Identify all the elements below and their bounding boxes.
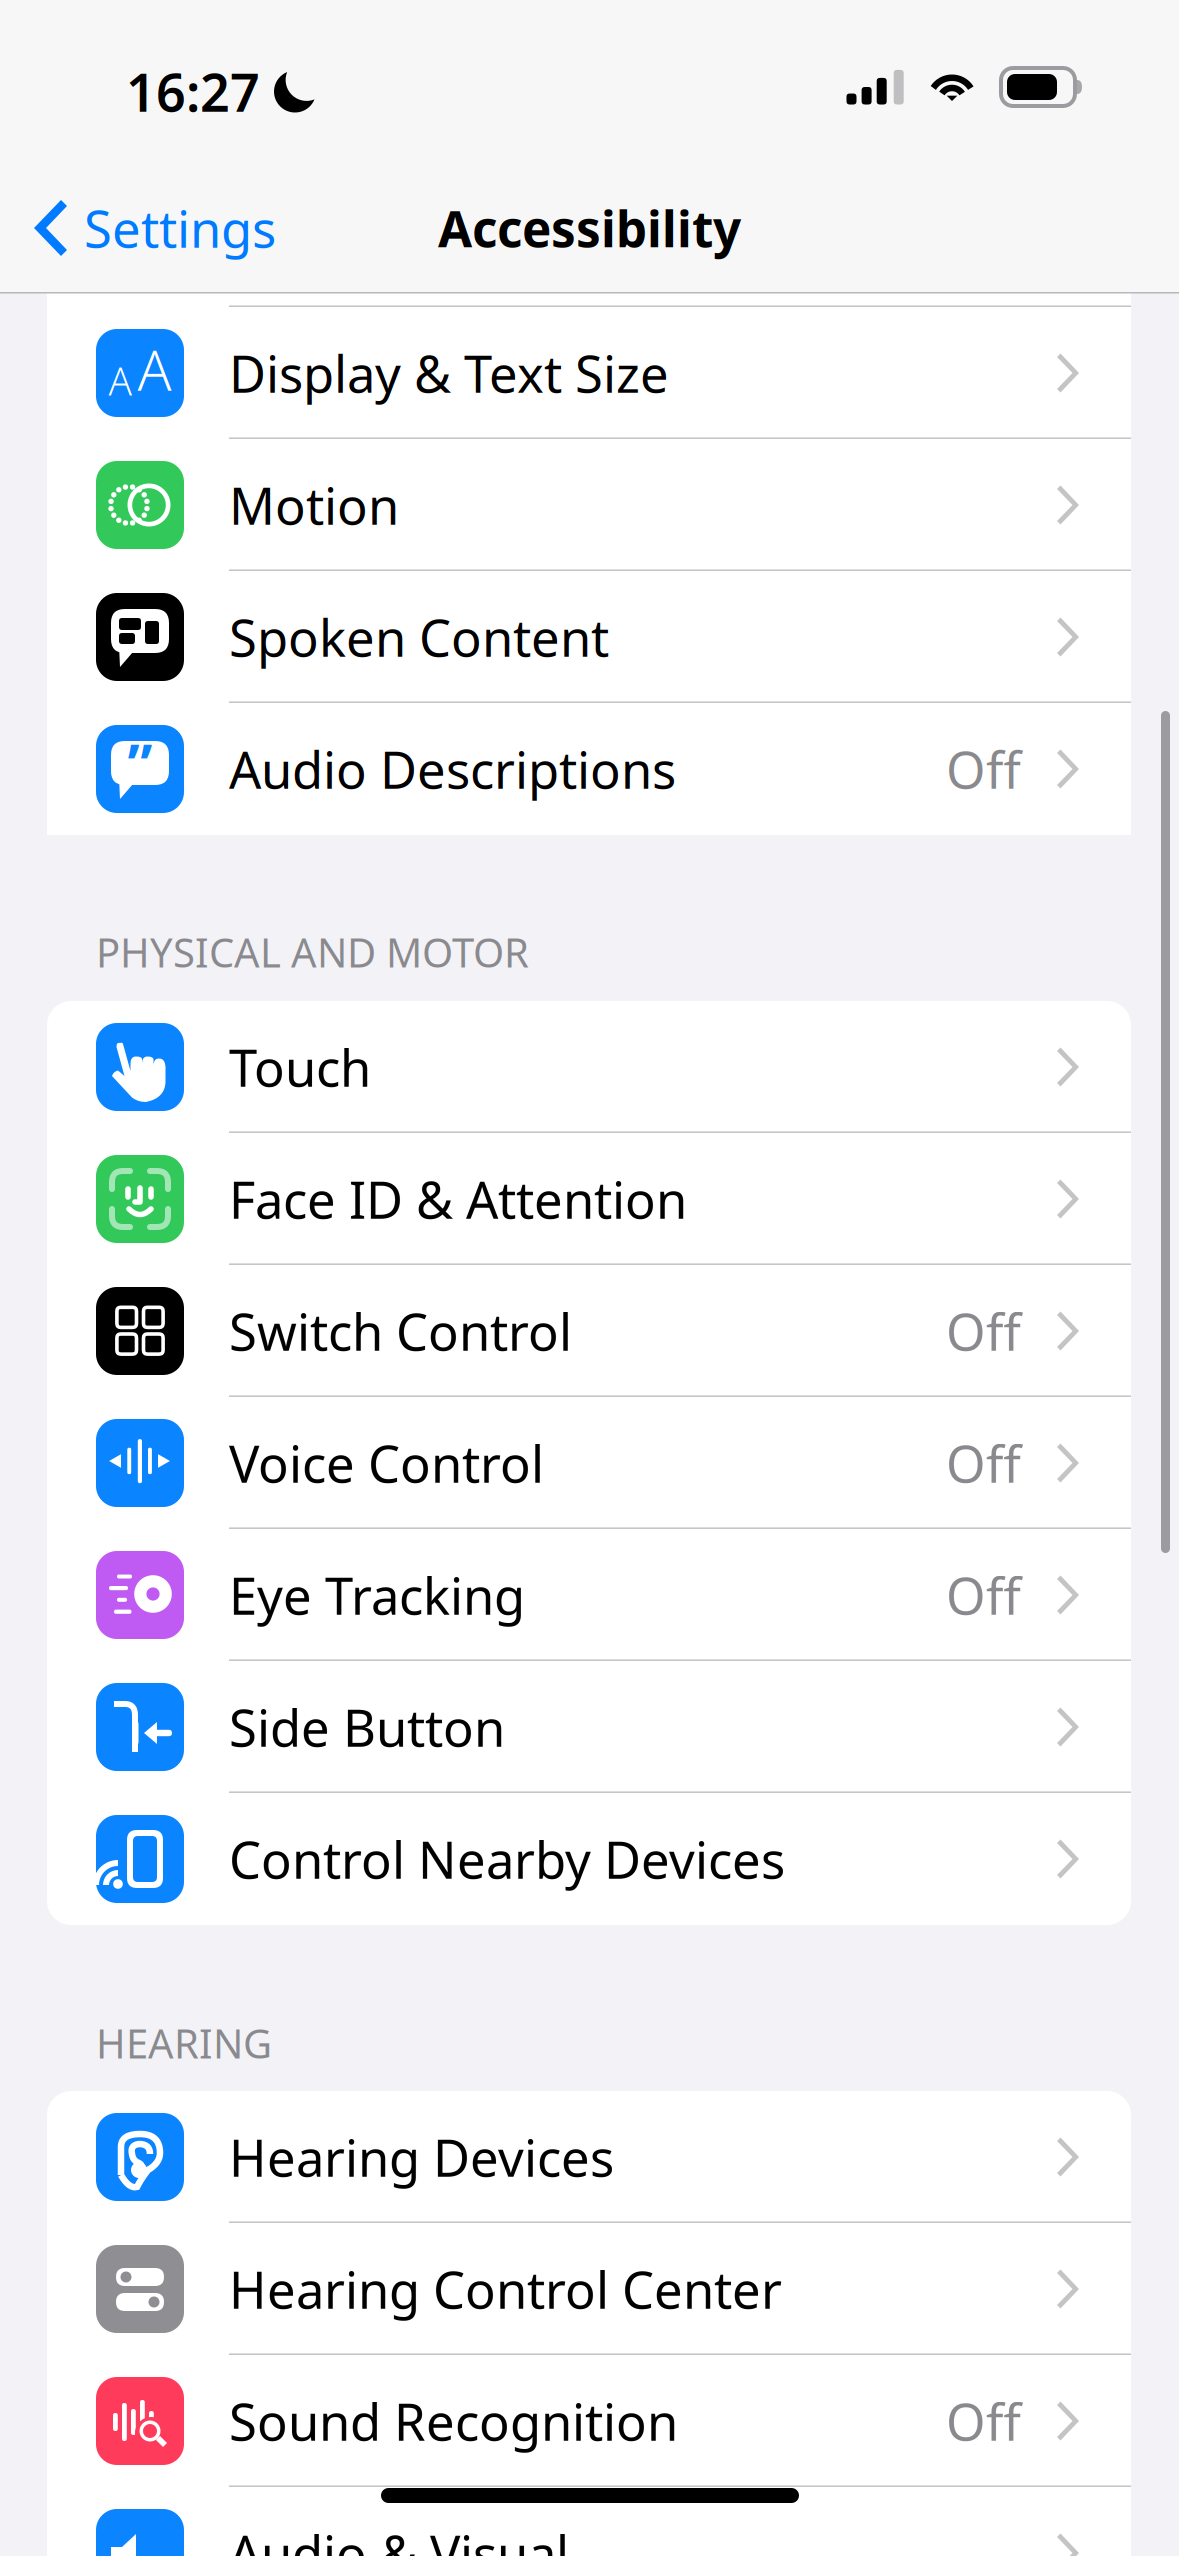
button[interactable]: Motion bbox=[47, 439, 1131, 571]
button[interactable]: A bbox=[47, 307, 1131, 439]
button[interactable]: Audio & Visual bbox=[47, 2487, 1131, 2556]
staticText: Face ID & Attention bbox=[229, 1165, 687, 1233]
staticText: Touch bbox=[229, 1033, 371, 1101]
staticText: Off bbox=[946, 1429, 1021, 1497]
staticText: Settings bbox=[84, 194, 276, 262]
button[interactable]: ” bbox=[47, 703, 1131, 835]
staticText: Audio Descriptions bbox=[229, 735, 676, 803]
button[interactable]: Settings bbox=[0, 178, 296, 278]
staticText: Spoken Content bbox=[229, 603, 609, 671]
staticText: Side Button bbox=[229, 1693, 505, 1761]
button[interactable]: Side Button bbox=[47, 1661, 1131, 1793]
button[interactable]: Switch Control bbox=[47, 1265, 1131, 1397]
button[interactable]: Voice Control bbox=[47, 1397, 1131, 1529]
button[interactable]: Hearing Devices bbox=[47, 2091, 1131, 2223]
staticText: ” bbox=[127, 726, 152, 800]
staticText: A bbox=[108, 355, 132, 406]
staticText: Off bbox=[946, 2387, 1021, 2455]
button[interactable]: Control Nearby Devices bbox=[47, 1793, 1131, 1925]
button[interactable]: Touch bbox=[47, 1001, 1131, 1133]
button[interactable]: Spoken Content bbox=[47, 571, 1131, 703]
staticText: Accessibility bbox=[438, 195, 741, 261]
staticText: Sound Recognition bbox=[229, 2387, 678, 2455]
staticText: Hearing Devices bbox=[229, 2123, 614, 2191]
staticText: Off bbox=[946, 1297, 1021, 1365]
staticText: 16:27 bbox=[126, 57, 260, 126]
staticText: Voice Control bbox=[229, 1429, 544, 1497]
staticText: Control Nearby Devices bbox=[229, 1825, 785, 1893]
staticText: Eye Tracking bbox=[229, 1561, 525, 1629]
staticText: Motion bbox=[229, 471, 399, 539]
staticText: HEARING bbox=[96, 2016, 272, 2069]
staticText: Switch Control bbox=[229, 1297, 572, 1365]
staticText: Display & Text Size bbox=[229, 339, 669, 407]
staticText: Off bbox=[946, 735, 1021, 803]
staticText: Hearing Control Center bbox=[229, 2255, 782, 2323]
button[interactable]: Hearing Control Center bbox=[47, 2223, 1131, 2355]
staticText: Off bbox=[946, 1561, 1021, 1629]
staticText: Audio & Visual bbox=[229, 2519, 569, 2556]
button[interactable]: Sound Recognition bbox=[47, 2355, 1131, 2487]
staticText: A bbox=[137, 332, 171, 406]
button[interactable]: Face ID & Attention bbox=[47, 1133, 1131, 1265]
button[interactable]: Eye Tracking bbox=[47, 1529, 1131, 1661]
staticText: PHYSICAL AND MOTOR bbox=[96, 925, 529, 978]
